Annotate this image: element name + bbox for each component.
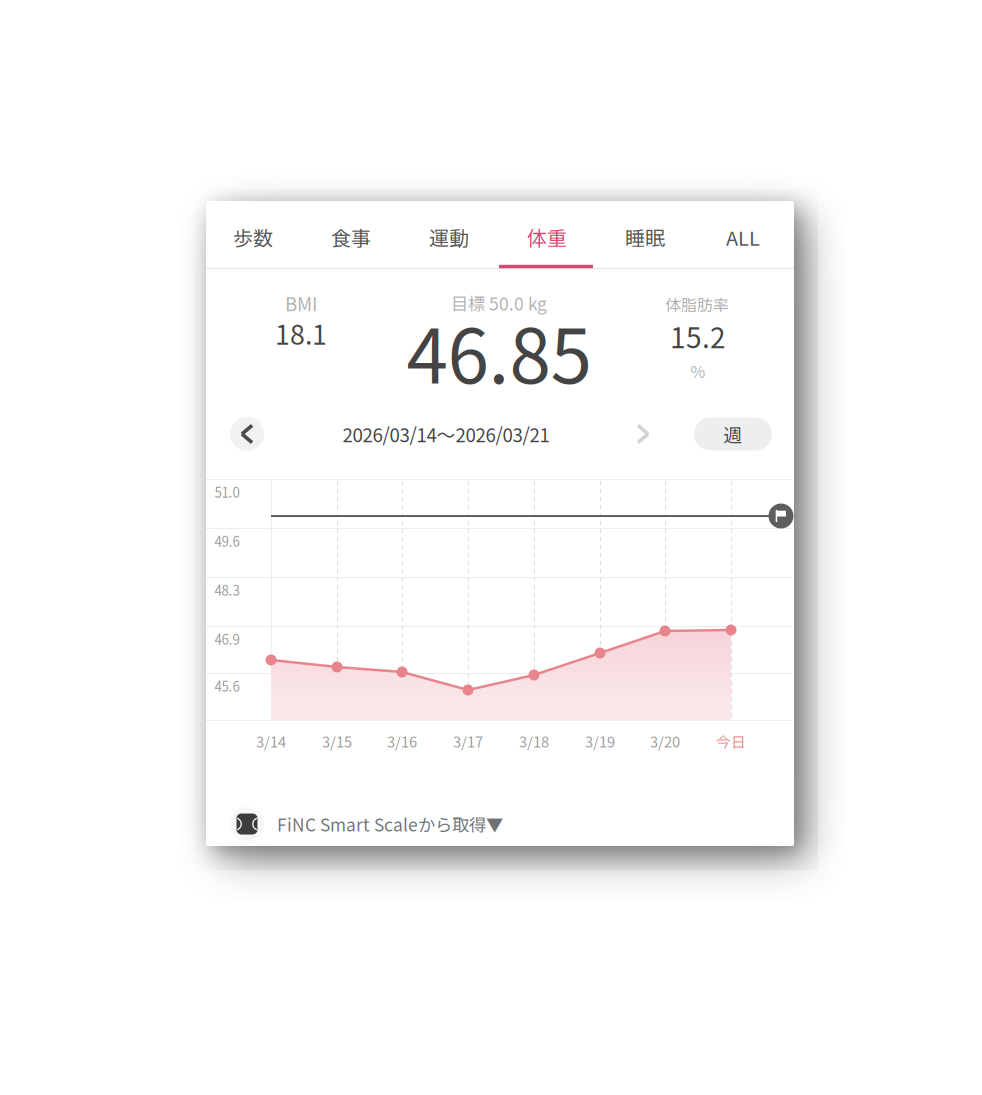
button[interactable]: 睡眠 [596, 203, 694, 270]
staticText: 運動 [429, 222, 469, 251]
staticText: 48.3 [214, 580, 239, 600]
staticText: % [690, 359, 705, 383]
staticText: 51.0 [214, 482, 239, 502]
staticText: 15.2 [670, 316, 726, 356]
staticText: 45.6 [214, 676, 239, 696]
staticText: 体脂肪率 [665, 292, 729, 316]
staticText: BMI [285, 289, 317, 316]
staticText: 歩数 [233, 222, 273, 251]
staticText: 49.6 [214, 531, 239, 551]
staticText: 週 [723, 420, 742, 447]
button[interactable]: FiNC Smart Scaleから取得▼ [277, 811, 503, 837]
staticText: FiNC Smart Scaleから取得▼ [277, 811, 503, 837]
staticText: 体重 [527, 222, 567, 251]
staticText: 3/16 [387, 730, 417, 752]
button[interactable]: 体重 [498, 203, 596, 270]
button[interactable]: 運動 [400, 203, 498, 270]
button[interactable]: 次の週 [623, 414, 663, 454]
button[interactable]: 歩数 [204, 203, 302, 270]
staticText: 3/19 [585, 730, 615, 752]
staticText: 3/15 [322, 730, 352, 752]
staticText: 3/17 [453, 730, 483, 752]
staticText: 今日 [716, 730, 746, 752]
staticText: 食事 [331, 222, 371, 251]
button[interactable]: ALL [694, 203, 792, 270]
staticText: ALL [726, 222, 760, 251]
staticText: 46.85 [406, 297, 591, 405]
staticText: 目標 50.0 kg [451, 290, 547, 316]
staticText: 睡眠 [625, 222, 665, 251]
staticText: 2026/03/14〜2026/03/21 [342, 420, 549, 447]
staticText: 3/20 [650, 730, 680, 752]
staticText: 46.9 [214, 629, 239, 649]
button[interactable]: 週 [694, 417, 772, 450]
staticText: 3/18 [519, 730, 549, 752]
staticText: 3/14 [256, 730, 286, 752]
button[interactable]: 食事 [302, 203, 400, 270]
button[interactable]: 前の週 [227, 414, 267, 454]
staticText: 18.1 [275, 314, 327, 352]
